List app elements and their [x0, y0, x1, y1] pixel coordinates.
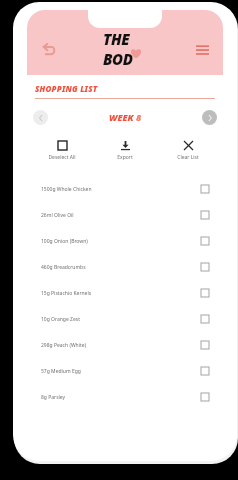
staticText: Export [117, 154, 133, 161]
staticText: WEEK [109, 111, 136, 123]
staticText: 10g Orange Zest [41, 316, 201, 323]
button[interactable]: THE [103, 29, 147, 69]
button[interactable]: 8g Parsley [27, 384, 223, 410]
staticText: 57g Medium Egg [41, 368, 201, 375]
staticText: 8g Parsley [41, 394, 201, 401]
staticText: BOD [103, 49, 133, 69]
button[interactable]: 10g Orange Zest [27, 306, 223, 332]
staticText: 460g Breadcrumbs [41, 264, 201, 271]
staticText: 8 [136, 111, 142, 123]
button[interactable]: Next week [202, 110, 217, 125]
staticText: 100g Onion (Brown) [41, 238, 201, 245]
button[interactable]: 26ml Olive Oil [27, 202, 223, 228]
button[interactable]: 57g Medium Egg [27, 358, 223, 384]
staticText: 15g Pistachio Kernels [41, 290, 201, 297]
button[interactable]: 298g Peach (White) [27, 332, 223, 358]
button[interactable]: Export [97, 137, 153, 163]
button[interactable]: 460g Breadcrumbs [27, 254, 223, 280]
button[interactable]: Menu [189, 36, 215, 62]
staticText: Deselect All [48, 154, 76, 161]
button[interactable]: 15g Pistachio Kernels [27, 280, 223, 306]
button[interactable]: Previous week [33, 110, 48, 125]
button[interactable]: Deselect All [34, 137, 90, 163]
staticText: 26ml Olive Oil [41, 212, 201, 219]
staticText: SHOPPING LIST [35, 83, 98, 94]
staticText: 298g Peach (White) [41, 342, 201, 349]
button[interactable]: 1500g Whole Chicken [27, 176, 223, 202]
button[interactable]: Clear List [160, 137, 216, 163]
staticText: Clear List [177, 154, 199, 161]
staticText: THE [103, 29, 130, 49]
staticText: 1500g Whole Chicken [41, 186, 201, 193]
button[interactable]: 100g Onion (Brown) [27, 228, 223, 254]
button[interactable]: Back [35, 36, 61, 62]
